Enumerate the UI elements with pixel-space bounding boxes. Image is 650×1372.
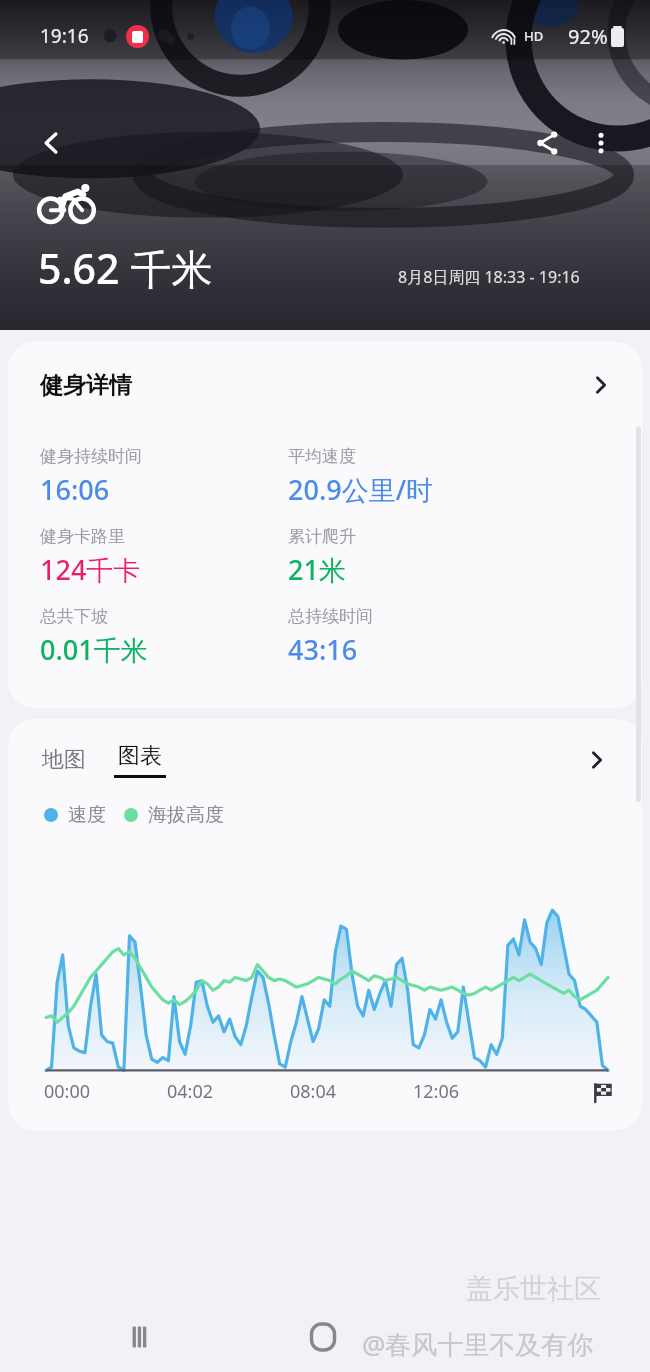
staticText: 总共下坡: [40, 606, 108, 627]
button[interactable]: Share: [520, 116, 574, 170]
staticText: 92%: [568, 23, 608, 50]
staticText: 海拔高度: [148, 803, 224, 827]
staticText: 8月8日周四 18:33 - 19:16: [398, 266, 580, 288]
button[interactable]: Back: [24, 116, 78, 170]
staticText: 08:04: [290, 1079, 337, 1104]
staticText: 04:02: [167, 1079, 214, 1104]
button[interactable]: Home: [302, 1316, 344, 1358]
staticText: 0.01千米: [40, 631, 148, 668]
staticText: @春风十里不及有你: [362, 1326, 594, 1362]
staticText: 21米: [288, 551, 346, 588]
button[interactable]: More options: [574, 116, 628, 170]
button[interactable]: 地图: [40, 738, 88, 782]
button[interactable]: 图表: [114, 742, 166, 778]
staticText: 12:06: [413, 1079, 460, 1104]
button[interactable]: Open chart details: [580, 743, 614, 777]
staticText: 124千卡: [40, 551, 141, 588]
staticText: 16:06: [40, 471, 110, 508]
button[interactable]: 健身详情: [8, 342, 642, 428]
staticText: 图表: [118, 742, 162, 770]
staticText: 地图: [42, 746, 86, 774]
staticText: 5.62 千米: [38, 240, 213, 296]
staticText: 速度: [68, 803, 106, 827]
staticText: 20.9公里/时: [288, 471, 434, 508]
staticText: HD: [524, 27, 544, 45]
staticText: 00:00: [44, 1079, 91, 1104]
staticText: 累计爬升: [288, 526, 356, 547]
staticText: 健身详情: [40, 371, 132, 400]
staticText: 43:16: [288, 631, 358, 668]
staticText: 总持续时间: [288, 606, 373, 627]
staticText: 平均速度: [288, 446, 356, 467]
staticText: 19:16: [40, 23, 89, 49]
staticText: 盖乐世社区: [466, 1272, 601, 1306]
staticText: 健身卡路里: [40, 526, 125, 547]
staticText: 健身持续时间: [40, 446, 142, 467]
button[interactable]: Recents: [120, 1316, 162, 1358]
